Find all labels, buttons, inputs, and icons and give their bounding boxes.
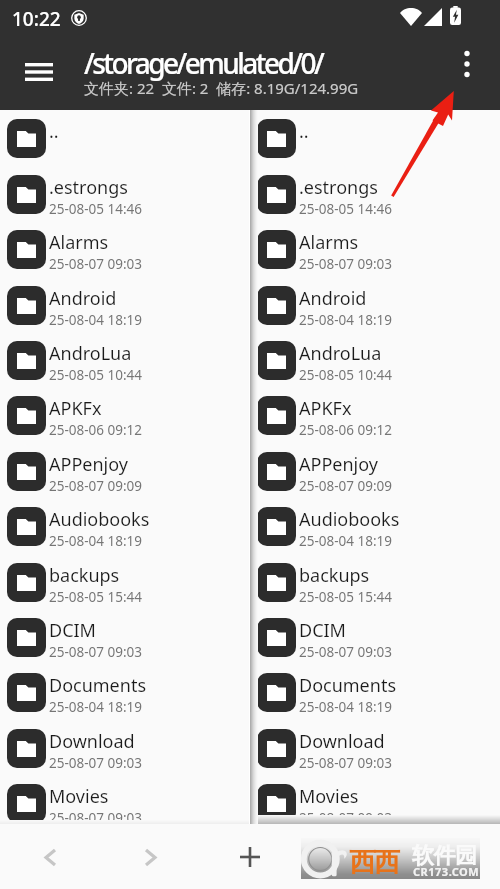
button[interactable]: .estrongs	[250, 167, 500, 222]
button[interactable]: AndroLua	[250, 333, 500, 388]
staticText: 25-08-05 10:44	[299, 366, 393, 384]
button[interactable]: Movies	[250, 776, 500, 824]
staticText: 25-08-07 09:09	[49, 477, 143, 495]
staticText: Movies	[49, 784, 109, 809]
button[interactable]: APKFx	[250, 388, 500, 443]
staticText: CR173.COM	[413, 864, 480, 879]
staticText: APPenjoy	[299, 452, 378, 477]
staticText: 25-08-07 09:03	[299, 643, 393, 661]
staticText: 25-08-07 09:03	[49, 255, 143, 273]
button[interactable]: Alarms	[0, 222, 250, 277]
staticText: 25-08-07 09:03	[299, 255, 393, 273]
staticText: 25-08-07 09:03	[49, 643, 143, 661]
button[interactable]: Android	[250, 278, 500, 333]
staticText: 25-08-07 09:03	[49, 754, 143, 772]
staticText: AndroLua	[299, 341, 382, 366]
staticText: AndroLua	[49, 341, 132, 366]
button[interactable]: DCIM	[250, 610, 500, 665]
button[interactable]: APKFx	[0, 388, 250, 443]
button[interactable]: Movies	[0, 776, 250, 824]
button[interactable]: Documents	[0, 665, 250, 720]
staticText: 25-08-04 18:19	[49, 311, 143, 329]
button[interactable]: Alarms	[250, 222, 500, 277]
staticText: 25-08-07 09:03	[299, 809, 393, 824]
staticText: DCIM	[299, 618, 346, 643]
button[interactable]: Forward	[128, 835, 172, 879]
staticText: 25-08-04 18:19	[49, 698, 143, 716]
staticText: APKFx	[299, 396, 352, 421]
staticText: DCIM	[49, 618, 96, 643]
button[interactable]: backups	[0, 555, 250, 610]
staticText: 10:22	[12, 6, 61, 32]
staticText: /storage/emulated/0/	[84, 44, 323, 82]
staticText: 25-08-05 15:44	[49, 588, 143, 606]
button[interactable]: DCIM	[0, 610, 250, 665]
button[interactable]: Android	[0, 278, 250, 333]
staticText: 25-08-06 09:12	[49, 421, 143, 439]
button[interactable]: APPenjoy	[250, 444, 500, 499]
button[interactable]: ..	[250, 111, 500, 166]
button[interactable]: Navigation menu	[11, 49, 67, 95]
staticText: backups	[49, 563, 120, 588]
staticText: Android	[49, 286, 117, 311]
button[interactable]: New	[228, 835, 272, 879]
staticText: Android	[299, 286, 367, 311]
staticText: ..	[299, 119, 309, 144]
button[interactable]: Download	[0, 721, 250, 776]
button[interactable]: Audiobooks	[250, 499, 500, 554]
staticText: Audiobooks	[299, 507, 400, 532]
button[interactable]: Download	[250, 721, 500, 776]
staticText: Documents	[49, 673, 147, 698]
staticText: 25-08-05 14:46	[299, 200, 393, 218]
staticText: 25-08-07 09:03	[49, 809, 143, 824]
staticText: 25-08-04 18:19	[299, 698, 393, 716]
button[interactable]: Audiobooks	[0, 499, 250, 554]
button[interactable]: backups	[250, 555, 500, 610]
staticText: APKFx	[49, 396, 102, 421]
button[interactable]: APPenjoy	[0, 444, 250, 499]
staticText: .estrongs	[299, 175, 378, 200]
staticText: Movies	[299, 784, 359, 809]
staticText: backups	[299, 563, 370, 588]
button[interactable]: ..	[0, 111, 250, 166]
staticText: Alarms	[49, 230, 109, 255]
staticText: Download	[299, 729, 385, 754]
staticText: 25-08-07 09:09	[299, 477, 393, 495]
staticText: 软件园	[412, 842, 477, 870]
staticText: 25-08-04 18:19	[49, 532, 143, 550]
button[interactable]: Back	[28, 835, 72, 879]
staticText: 25-08-07 09:03	[299, 754, 393, 772]
staticText: 文件夹: 22 文件: 2 储存: 8.19G/124.99G	[84, 78, 359, 98]
staticText: APPenjoy	[49, 452, 128, 477]
staticText: .estrongs	[49, 175, 128, 200]
button[interactable]: .estrongs	[0, 167, 250, 222]
staticText: Documents	[299, 673, 397, 698]
staticText: 25-08-05 14:46	[49, 200, 143, 218]
staticText: Audiobooks	[49, 507, 150, 532]
staticText: 25-08-06 09:12	[299, 421, 393, 439]
button[interactable]: Documents	[250, 665, 500, 720]
button[interactable]: AndroLua	[0, 333, 250, 388]
staticText: ..	[49, 119, 59, 144]
staticText: 25-08-05 15:44	[299, 588, 393, 606]
staticText: Alarms	[299, 230, 359, 255]
staticText: Download	[49, 729, 135, 754]
button[interactable]: More options	[444, 41, 490, 87]
staticText: 25-08-05 10:44	[49, 366, 143, 384]
staticText: 25-08-04 18:19	[299, 532, 393, 550]
staticText: 25-08-04 18:19	[299, 311, 393, 329]
staticText: 西西	[350, 846, 399, 879]
